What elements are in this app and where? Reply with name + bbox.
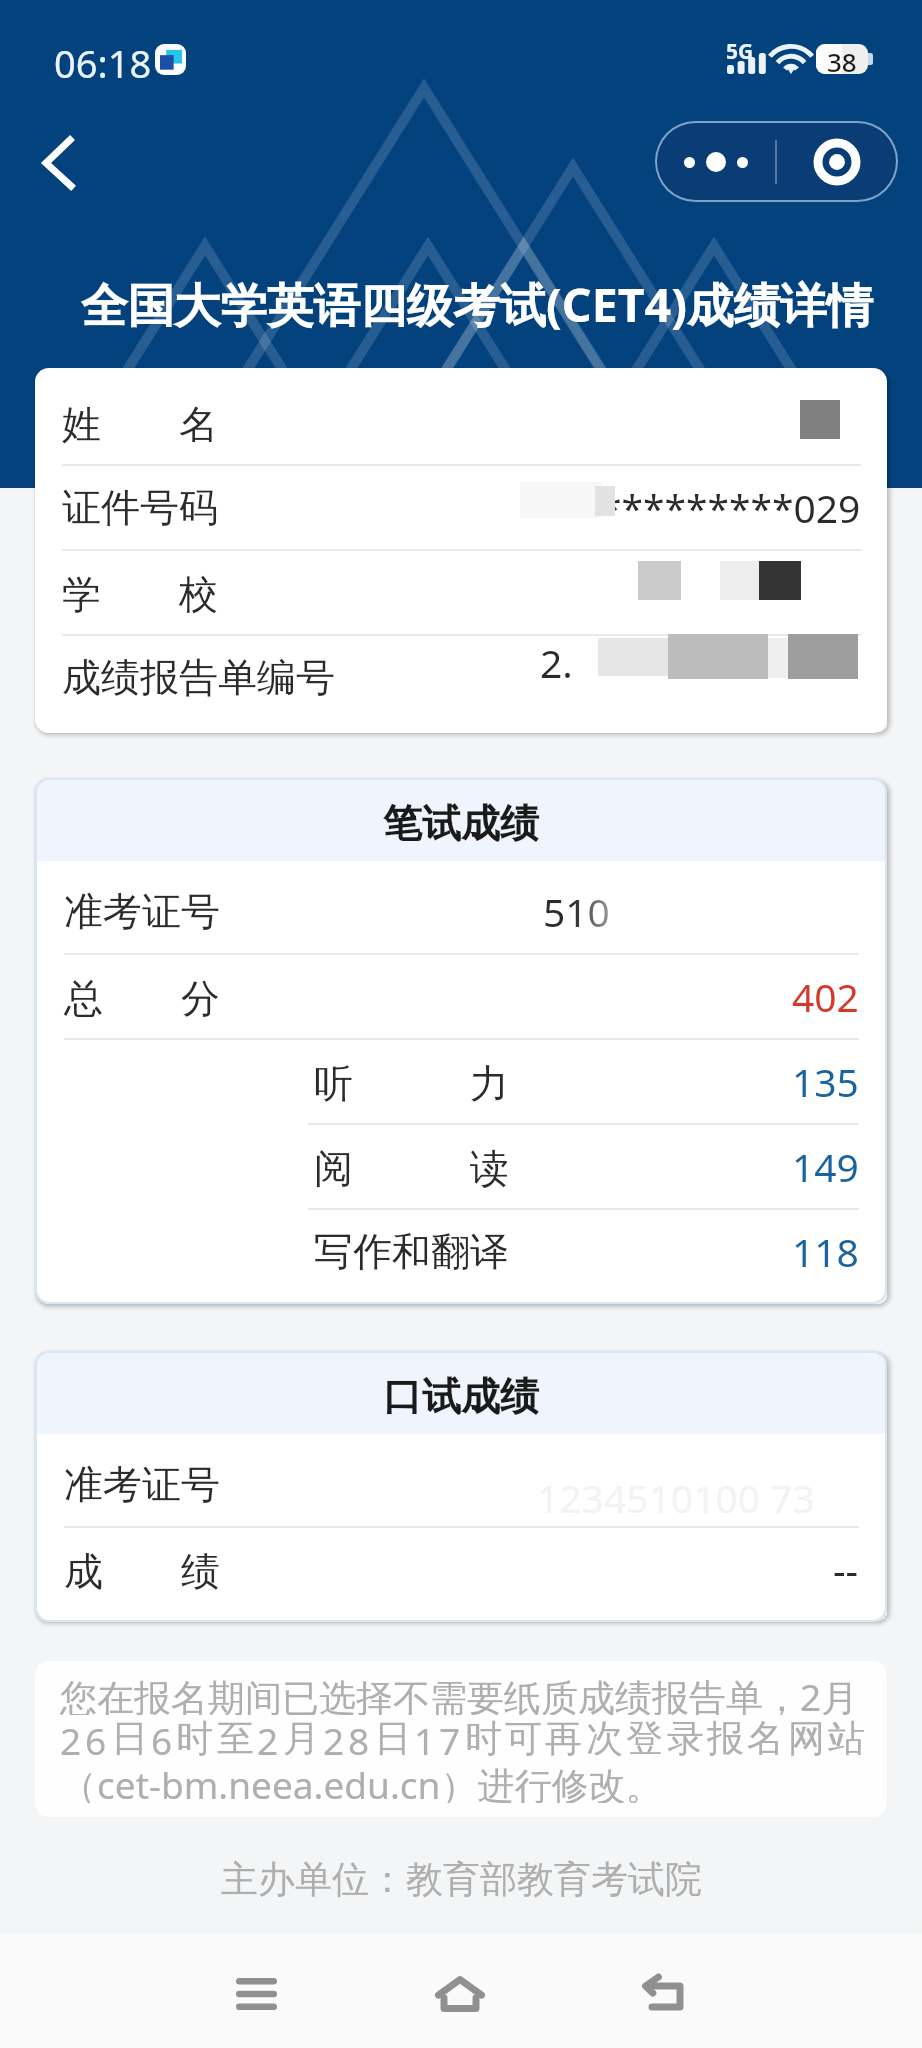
button[interactable]: 关闭: [777, 123, 896, 200]
button[interactable]: 证件号码: [35, 466, 887, 549]
button[interactable]: 返回: [614, 1944, 714, 2044]
staticText: --: [833, 1543, 859, 1596]
button[interactable]: 成 绩: [37, 1528, 885, 1611]
staticText: 可: [505, 1715, 542, 1759]
staticText: 日: [111, 1715, 148, 1759]
staticText: 证件号码: [62, 483, 218, 532]
button[interactable]: 主页: [410, 1944, 510, 2044]
staticText: 姓 名: [62, 396, 218, 449]
button[interactable]: 写作和翻译: [37, 1210, 885, 1293]
staticText: 成绩报告单编号: [62, 653, 335, 702]
button[interactable]: 成绩报告单编号: [35, 636, 887, 719]
staticText: 阅 读: [314, 1140, 509, 1193]
staticText: 2: [323, 1715, 345, 1759]
staticText: 再: [545, 1715, 582, 1759]
button[interactable]: 阅 读: [37, 1125, 885, 1208]
staticText: 登: [626, 1715, 663, 1759]
staticText: 5G: [726, 37, 754, 66]
staticText: 06:18: [54, 37, 152, 89]
button[interactable]: 准考证号: [37, 870, 885, 953]
staticText: 站: [828, 1715, 865, 1759]
staticText: 118: [792, 1225, 859, 1278]
staticText: ***********029: [557, 481, 861, 534]
staticText: 日: [374, 1715, 411, 1759]
button[interactable]: 最近任务: [206, 1944, 306, 2044]
button[interactable]: 听 力: [37, 1040, 885, 1123]
staticText: 成 绩: [64, 1543, 220, 1596]
staticText: 149: [792, 1140, 859, 1193]
staticText: 录: [667, 1715, 704, 1759]
staticText: 时: [465, 1715, 502, 1759]
staticText: 网: [788, 1715, 825, 1759]
button[interactable]: 更多: [657, 123, 775, 200]
staticText: 口试成绩: [383, 1372, 539, 1421]
staticText: 8: [348, 1715, 370, 1759]
staticText: 全国大学英语四级考试(CET4)成绩详情: [81, 272, 873, 336]
staticText: 笔试成绩: [383, 799, 539, 848]
staticText: 至: [217, 1715, 254, 1759]
staticText: 2: [257, 1715, 279, 1759]
staticText: 时: [176, 1715, 213, 1759]
staticText: 写作和翻译: [314, 1227, 509, 1276]
button[interactable]: 总 分: [37, 955, 885, 1038]
staticText: 6: [151, 1715, 173, 1759]
button[interactable]: 准考证号: [37, 1443, 885, 1526]
staticText: 510: [543, 885, 610, 938]
staticText: （cet-bm.neea.edu.cn）进行修改。: [60, 1759, 865, 1803]
staticText: 您在报名期间已选择不需要纸质成绩报告单，2月: [60, 1671, 865, 1715]
staticText: 2.: [540, 636, 573, 689]
staticText: 1234510100 73: [537, 1471, 815, 1524]
staticText: 1: [414, 1715, 436, 1759]
staticText: 月: [283, 1715, 320, 1759]
staticText: 主办单位：教育部教育考试院: [221, 1856, 702, 1902]
staticText: 7: [439, 1715, 461, 1759]
button[interactable]: 返回: [20, 123, 100, 203]
staticText: 402: [792, 970, 859, 1023]
staticText: 次: [586, 1715, 623, 1759]
staticText: 总 分: [64, 970, 220, 1023]
staticText: 135: [792, 1055, 859, 1108]
staticText: 报: [707, 1715, 744, 1759]
staticText: 学 校: [62, 566, 218, 619]
staticText: 6: [85, 1715, 107, 1759]
staticText: 听 力: [314, 1055, 509, 1108]
button[interactable]: 姓 名: [35, 381, 887, 464]
staticText: 准考证号: [64, 1460, 220, 1509]
staticText: 38: [827, 44, 857, 74]
staticText: 名: [747, 1715, 784, 1759]
staticText: 2: [60, 1715, 82, 1759]
staticText: 准考证号: [64, 887, 220, 936]
button[interactable]: 学 校: [35, 551, 887, 634]
